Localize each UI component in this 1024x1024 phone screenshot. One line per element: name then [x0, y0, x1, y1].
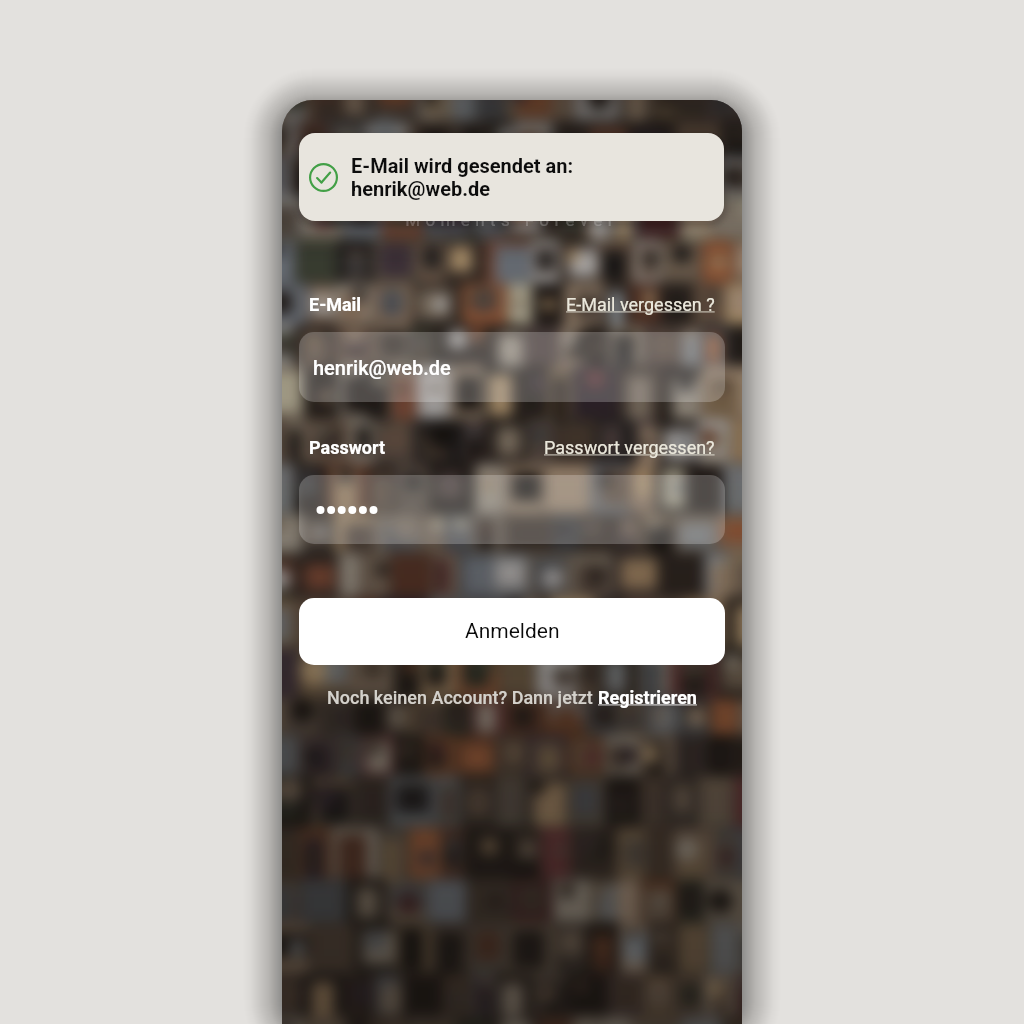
staticText: henrik@web.de: [313, 356, 451, 379]
staticText: Passwort: [309, 437, 386, 458]
staticText: E-Mail: [309, 294, 362, 315]
other: Success: [309, 163, 338, 192]
staticText: E-Mail vergessen ?: [566, 294, 715, 315]
staticText: henrik@web.de: [351, 177, 491, 200]
button[interactable]: Passwort vergessen?: [544, 437, 715, 458]
button[interactable]: Anmelden: [299, 598, 725, 665]
button[interactable]: henrik@web.de: [299, 332, 725, 402]
staticText: Anmelden: [465, 619, 560, 644]
staticText: Passwort vergessen?: [544, 437, 715, 458]
staticText: Registrieren: [598, 687, 697, 708]
button[interactable]: E-Mail vergessen ?: [566, 294, 715, 315]
staticText: Noch keinen Account? Dann jetzt: [327, 687, 598, 708]
button[interactable]: Success: [299, 133, 724, 221]
staticText: Moments Forever: [282, 210, 742, 230]
button[interactable]: Registrieren: [598, 687, 697, 708]
button[interactable]: Passwort: [299, 475, 725, 544]
staticText: E-Mail wird gesendet an:: [351, 154, 574, 177]
